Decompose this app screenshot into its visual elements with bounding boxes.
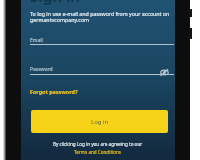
staticText: Password	[30, 66, 53, 73]
button[interactable]: Forgot password?	[30, 88, 78, 95]
staticText: Email	[30, 37, 43, 44]
staticText: By clicking Log in you are agreeing to o…	[53, 141, 143, 147]
staticText: Sign in	[30, 0, 81, 6]
button[interactable]: Log in	[31, 110, 168, 133]
staticText: Log in	[91, 118, 109, 126]
button[interactable]	[160, 69, 169, 76]
button[interactable]: Terms and Conditions	[74, 149, 122, 155]
staticText: germantvcompany.com	[30, 16, 90, 23]
staticText: To log in use e-mail and password from y…	[30, 10, 170, 17]
